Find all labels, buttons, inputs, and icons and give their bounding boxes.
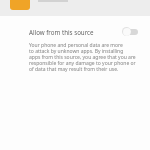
staticText: responsible for any damage to your phone… [29,60,140,66]
staticText: to attack by unknown apps. By installing [29,48,124,54]
staticText: Your phone and personal data are more vu… [29,42,140,48]
staticText: of data that may result from their use. [29,66,119,72]
staticText: apps from this source, you agree that yo… [29,54,136,60]
button[interactable]: Allow from this source [0,23,150,40]
staticText: Allow from this source [29,28,122,36]
button[interactable]: Allow from this source toggle [122,26,139,37]
